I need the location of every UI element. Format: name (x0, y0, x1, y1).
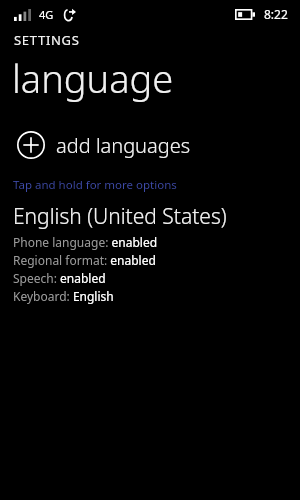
button[interactable]: Tap and hold for more options (0, 175, 300, 195)
staticText: English (United States) (13, 202, 227, 231)
staticText: 8:22 (264, 6, 288, 22)
staticText: 4G (39, 7, 54, 22)
staticText: Phone language: enabled (13, 234, 158, 250)
staticText: Regional format: enabled (13, 252, 156, 268)
button[interactable]: English (United States) (0, 200, 300, 311)
staticText: Speech: enabled (13, 270, 106, 286)
other: Battery (235, 9, 255, 20)
other: Signal strength (14, 9, 31, 21)
button[interactable]: add languages (0, 127, 300, 163)
staticText: Keyboard: English (13, 288, 114, 304)
staticText: SETTINGS (14, 31, 80, 49)
staticText: language (12, 52, 174, 104)
other: Call forwarding (62, 8, 76, 22)
staticText: add languages (56, 132, 191, 159)
